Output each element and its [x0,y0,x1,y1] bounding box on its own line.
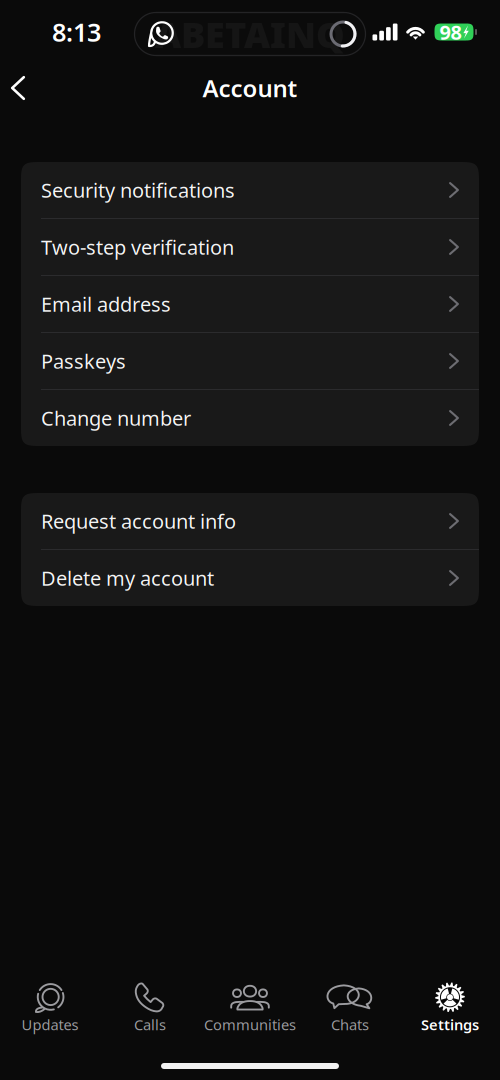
staticText: 8:13 [52,15,101,49]
button[interactable]: Updates [0,982,100,1034]
button[interactable]: Two-step verification [21,219,479,275]
staticText: Security notifications [41,177,235,203]
staticText: Account [202,72,297,104]
staticText: Delete my account [41,565,214,591]
button[interactable]: Calls [100,982,200,1034]
staticText: ABETAINQ [155,10,345,58]
button[interactable]: Change number [21,390,479,446]
button[interactable]: Chats [300,982,400,1034]
staticText: Calls [134,1015,166,1034]
button[interactable]: Back [0,64,43,112]
staticText: Communities [204,1015,296,1034]
button[interactable]: Security notifications [21,162,479,218]
staticText: Passkeys [41,348,126,374]
button[interactable]: Passkeys [21,333,479,389]
button[interactable]: Delete my account [21,550,479,606]
staticText: Email address [41,291,171,317]
staticText: 98 [439,19,461,45]
staticText: Chats [331,1015,369,1034]
button[interactable]: Request account info [21,493,479,549]
staticText: Updates [21,1015,78,1034]
staticText: Settings [421,1015,479,1034]
staticText: Request account info [41,508,236,534]
button[interactable]: Settings [400,982,500,1034]
staticText: Change number [41,405,191,431]
staticText: Two-step verification [41,234,234,260]
button[interactable]: Communities [200,982,300,1034]
button[interactable]: Email address [21,276,479,332]
